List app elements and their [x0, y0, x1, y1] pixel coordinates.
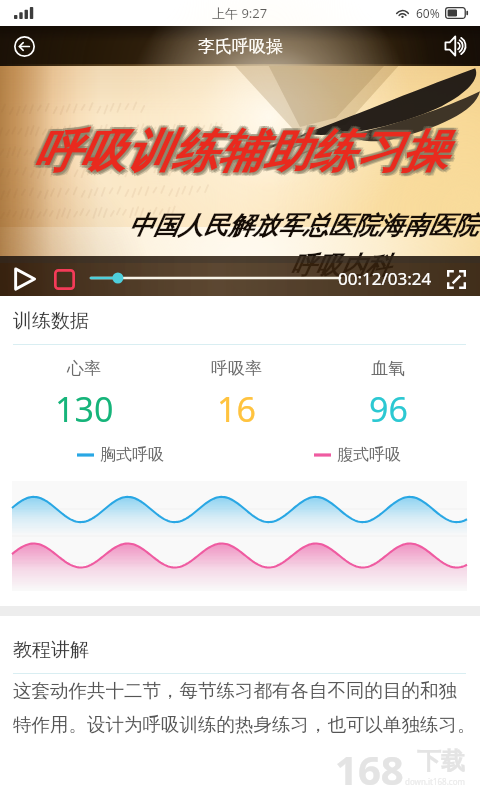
staticText: 这套动作共十二节，每节练习都有各自不同的目的和独: [13, 679, 457, 702]
staticText: 呼吸训练辅助练习操: [33, 121, 447, 179]
staticText: 呼吸训练辅助练习操: [36, 126, 450, 184]
button[interactable]: Fullscreen: [440, 263, 473, 296]
staticText: 呼吸率: [211, 358, 262, 379]
staticText: 呼吸训练辅助练习操: [31, 121, 445, 179]
button[interactable]: Stop: [47, 262, 81, 296]
staticText: 下载: [417, 746, 465, 776]
staticText: 呼吸内科: [290, 250, 390, 281]
staticText: 李氏呼吸操: [198, 36, 283, 57]
staticText: 168: [335, 742, 404, 787]
staticText: 130: [55, 386, 114, 432]
staticText: 00:12/03:24: [338, 267, 432, 290]
staticText: 呼吸训练辅助练习操: [36, 123, 450, 181]
staticText: 血氧: [371, 358, 405, 379]
button[interactable]: Volume: [436, 26, 476, 66]
staticText: 教程讲解: [13, 638, 89, 662]
staticText: 96: [369, 386, 408, 432]
staticText: 训练数据: [13, 309, 89, 333]
staticText: 上午 9:27: [212, 4, 268, 22]
staticText: 呼吸训练辅助练习操: [31, 123, 445, 181]
staticText: 腹式呼吸: [337, 445, 401, 465]
staticText: down.it168.com: [405, 776, 465, 787]
staticText: 呼吸训练辅助练习操: [33, 123, 447, 181]
button[interactable]: Play: [7, 262, 41, 296]
staticText: 呼吸训练辅助练习操: [31, 125, 445, 183]
staticText: 胸式呼吸: [100, 445, 164, 465]
button[interactable]: Back: [4, 26, 44, 66]
staticText: 心率: [67, 358, 101, 379]
staticText: 中国人民解放军总医院海南医院: [128, 210, 478, 241]
staticText: 呼吸训练辅助练习操: [33, 126, 447, 184]
staticText: 特作用。设计为呼吸训练的热身练习，也可以单独练习。: [13, 713, 476, 736]
staticText: 60%: [416, 5, 440, 21]
staticText: 16: [217, 386, 256, 432]
staticText: 呼吸训练辅助练习操: [35, 121, 449, 179]
staticText: 呼吸训练辅助练习操: [35, 125, 449, 183]
